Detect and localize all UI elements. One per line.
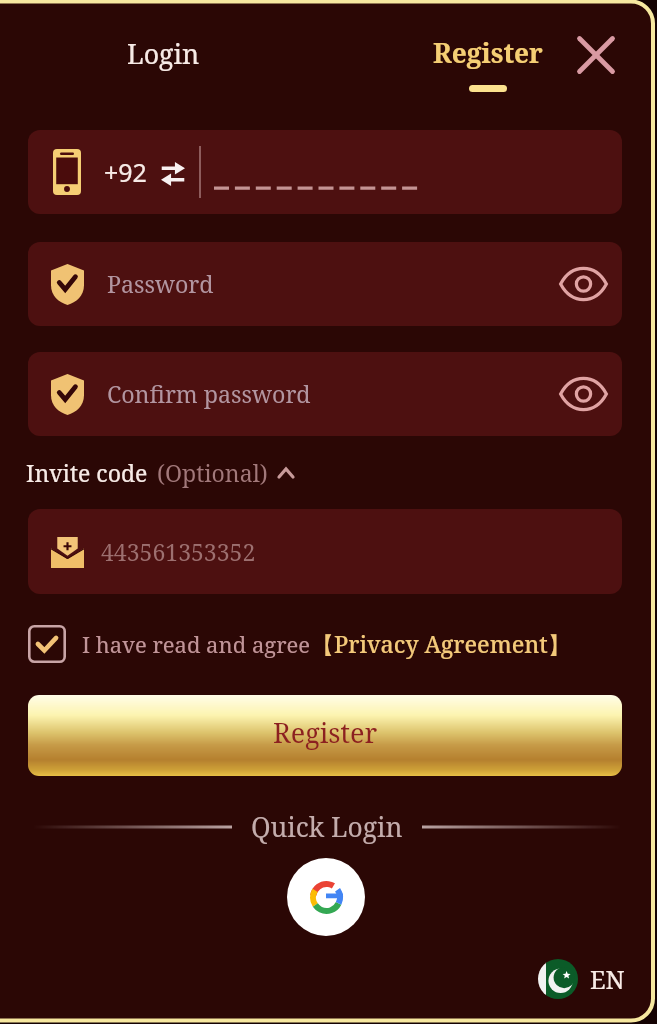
button[interactable]: EN [530,953,633,1005]
staticText: Quick Login [251,809,403,845]
button[interactable]: +92 [28,130,622,214]
button[interactable]: Register [28,695,622,776]
staticText: EN [590,962,625,996]
button[interactable]: Invite code [20,452,301,493]
staticText: Invite code [26,457,148,488]
button[interactable]: Confirm password [28,352,622,436]
staticText: Confirm password [107,378,311,410]
button[interactable]: Sign in with Google [287,858,365,936]
staticText: 443561353352 [101,536,256,567]
button[interactable]: Login [119,30,208,76]
staticText: Password [107,268,214,300]
staticText: Register [273,714,378,751]
staticText: Login [127,35,200,71]
staticText: 【Privacy Agreement】 [311,628,571,660]
button[interactable]: Register [425,31,551,96]
button[interactable]: I have read and agree [22,619,577,669]
button[interactable]: Close [572,31,620,79]
button[interactable]: Show password [558,369,608,419]
staticText: (Optional) [157,457,268,488]
staticText: I have read and agree [82,629,311,659]
button[interactable]: Show password [558,259,608,309]
staticText: +92 [104,155,147,189]
button[interactable]: Password [28,242,622,326]
button[interactable]: 443561353352 [28,509,622,594]
staticText: Register [433,35,543,71]
